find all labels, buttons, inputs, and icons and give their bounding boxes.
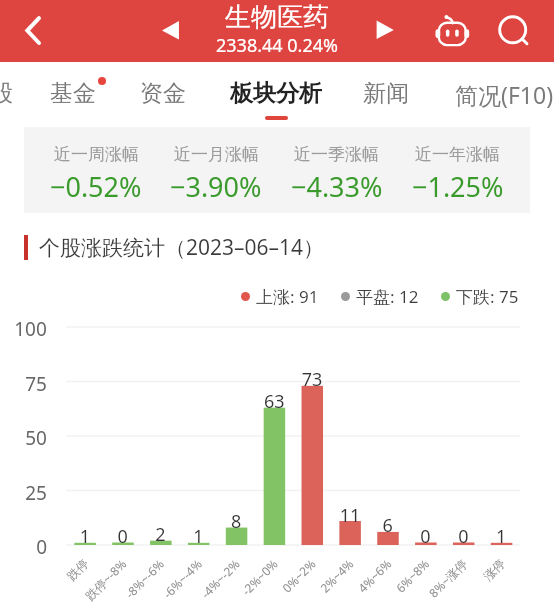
button[interactable]: 板块分析 xyxy=(216,62,337,124)
staticText: 板块分析 xyxy=(230,79,322,108)
staticText: 个股涨跌统计（2023–06–14） xyxy=(39,233,325,262)
button[interactable]: 新闻 xyxy=(349,62,426,124)
button[interactable]: Next sector xyxy=(365,10,405,50)
button[interactable]: Previous sector xyxy=(150,10,190,50)
button[interactable]: Search xyxy=(491,8,535,52)
staticText: 股 xyxy=(0,79,13,108)
staticText: 2338.44 0.24% xyxy=(216,33,338,58)
staticText: 资金 xyxy=(140,79,186,108)
staticText: 近一年涨幅 xyxy=(415,144,500,165)
button[interactable]: 基金 xyxy=(36,62,110,124)
staticText: 下跌: 75 xyxy=(456,285,519,307)
button[interactable]: 简况(F10) xyxy=(441,62,554,124)
button[interactable]: 股 xyxy=(0,62,50,124)
staticText: −0.52% xyxy=(50,168,142,205)
staticText: 近一月涨幅 xyxy=(174,144,259,165)
button[interactable]: Back xyxy=(6,9,50,53)
staticText: 平盘: 12 xyxy=(356,285,419,307)
staticText: 简况(F10) xyxy=(455,79,554,110)
staticText: −1.25% xyxy=(412,168,504,205)
button[interactable]: 资金 xyxy=(126,62,200,124)
staticText: 近一周涨幅 xyxy=(54,144,139,165)
staticText: 新闻 xyxy=(363,79,409,108)
button[interactable]: AI assistant xyxy=(429,9,475,55)
staticText: −3.90% xyxy=(170,168,262,205)
staticText: 基金 xyxy=(50,79,96,108)
staticText: 近一季涨幅 xyxy=(294,144,379,165)
staticText: −4.33% xyxy=(291,168,383,205)
staticText: 生物医药 xyxy=(225,1,329,34)
staticText: 上涨: 91 xyxy=(256,285,319,307)
